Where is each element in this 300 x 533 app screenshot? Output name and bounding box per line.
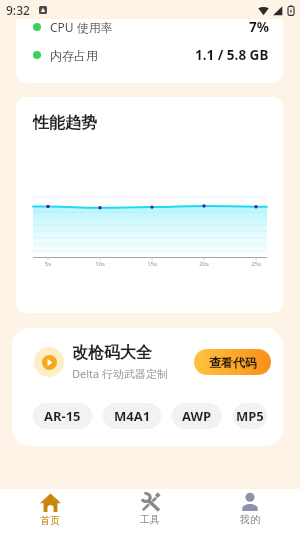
staticText: 首页: [40, 514, 60, 527]
staticText: 性能趋势: [33, 113, 97, 133]
staticText: 内存占用: [50, 48, 98, 63]
staticText: CPU 使用率: [50, 19, 113, 35]
staticText: 1.1 / 5.8 GB: [195, 46, 269, 64]
button[interactable]: AR-15: [33, 403, 92, 429]
button[interactable]: Home: [0, 489, 100, 533]
staticText: 20s: [194, 260, 214, 268]
button[interactable]: AWP: [172, 403, 222, 429]
button[interactable]: MP5: [233, 403, 267, 429]
staticText: 15s: [142, 260, 162, 268]
staticText: 查看代码: [209, 355, 257, 370]
button[interactable]: CPU 使用率: [33, 19, 269, 38]
staticText: 25s: [246, 260, 266, 268]
button[interactable]: Profile: [200, 489, 300, 533]
staticText: 改枪码大全: [72, 343, 152, 363]
staticText: 我的: [240, 513, 260, 526]
staticText: 7%: [249, 19, 269, 36]
staticText: AWP: [182, 407, 212, 425]
staticText: Delta 行动武器定制: [72, 366, 169, 381]
staticText: 5s: [38, 260, 58, 268]
staticText: AR-15: [44, 407, 81, 425]
button[interactable]: 查看代码: [194, 349, 271, 375]
button[interactable]: 改枪码大全: [12, 328, 283, 446]
staticText: M4A1: [114, 407, 151, 425]
staticText: MP5: [236, 407, 264, 425]
staticText: 9:32: [6, 2, 30, 18]
staticText: 工具: [140, 513, 160, 526]
staticText: 10s: [90, 260, 110, 268]
button[interactable]: Tools: [100, 489, 200, 533]
button[interactable]: 内存占用: [33, 44, 269, 66]
button[interactable]: M4A1: [103, 403, 161, 429]
